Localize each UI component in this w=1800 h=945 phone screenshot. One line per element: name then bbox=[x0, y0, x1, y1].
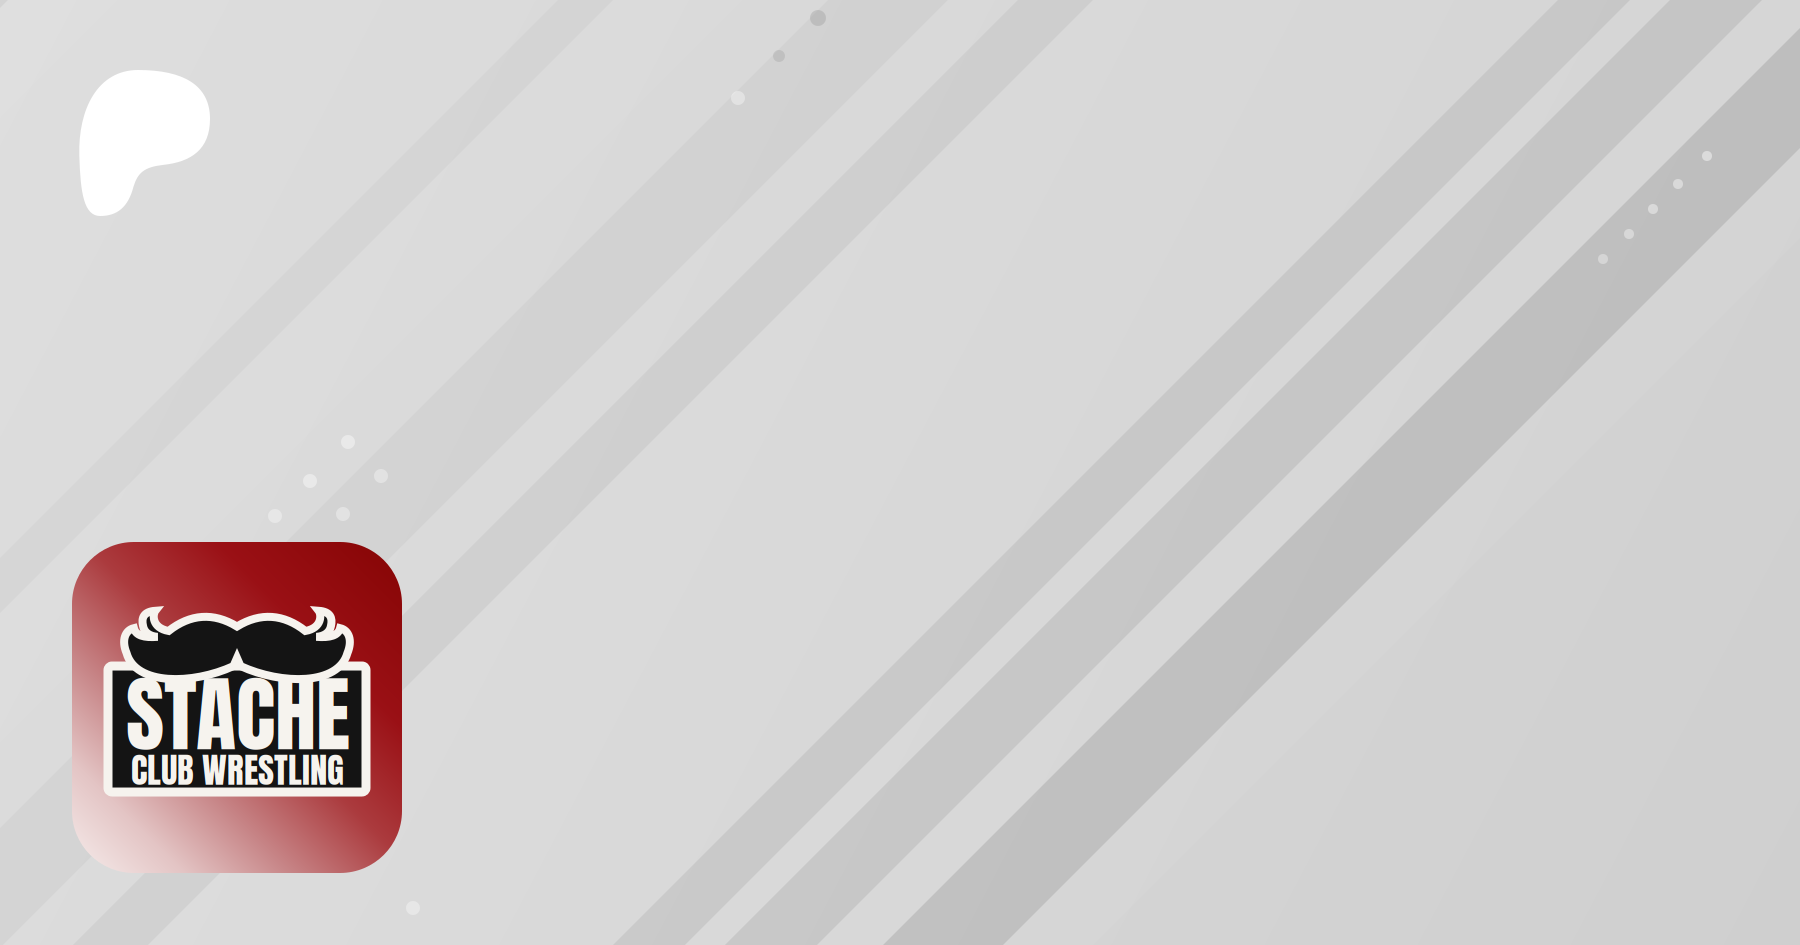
button[interactable]: Patreon bbox=[78, 70, 210, 216]
button[interactable]: Stache Club Wrestling bbox=[72, 542, 402, 873]
staticText: CLUB WRESTLING bbox=[131, 744, 344, 796]
staticText: STACHE bbox=[126, 652, 350, 776]
